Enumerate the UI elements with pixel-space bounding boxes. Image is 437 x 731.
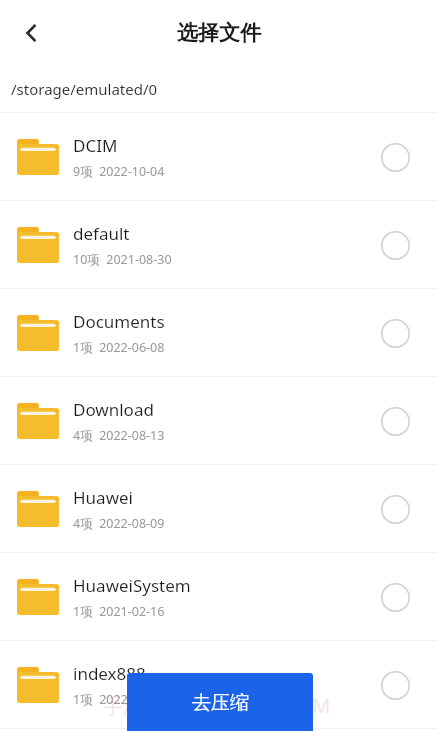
staticText: 手游5588 · MX5588.COM [103,692,331,719]
button[interactable]: Download [0,377,437,464]
staticText: 选择文件 [177,20,261,46]
staticText: 4项 2022-08-09 [73,515,165,532]
button[interactable]: /storage/emulated/0 [0,66,437,112]
staticText: Huawei [73,486,133,509]
button[interactable]: Select index888 [371,661,419,709]
button[interactable]: Huawei [0,465,437,552]
button[interactable]: Select DCIM [371,133,419,181]
button[interactable]: default [0,201,437,288]
button[interactable]: index888 [0,641,437,728]
staticText: /storage/emulated/0 [11,79,158,99]
staticText: HuaweiSystem [73,574,191,597]
staticText: Download [73,398,154,421]
staticText: default [73,222,130,245]
staticText: 9项 2022-10-04 [73,163,165,180]
button[interactable]: DCIM [0,113,437,200]
staticText: 10项 2021-08-30 [73,251,172,268]
staticText: 1项 2021-02-16 [73,603,165,620]
button[interactable]: HuaweiSystem [0,553,437,640]
button[interactable]: Select Documents [371,309,419,357]
button[interactable]: 去压缩 [127,673,313,731]
button[interactable]: Back [8,10,54,56]
staticText: 1项 2022-06-08 [73,339,165,356]
staticText: DCIM [73,134,118,157]
button[interactable]: Select HuaweiSystem [371,573,419,621]
staticText: 1项 2022-08-22 [73,691,165,708]
button[interactable]: Select default [371,221,419,269]
button[interactable]: Documents [0,289,437,376]
staticText: Documents [73,310,165,333]
staticText: index888 [73,662,146,685]
staticText: 去压缩 [192,691,249,715]
staticText: 4项 2022-08-13 [73,427,165,444]
button[interactable]: Select Huawei [371,485,419,533]
button[interactable]: Select Download [371,397,419,445]
